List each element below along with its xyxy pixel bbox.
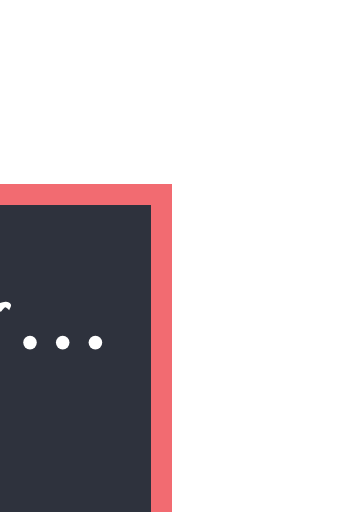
button[interactable]: Card frame [0,184,172,512]
button[interactable]: Card content [0,205,151,512]
